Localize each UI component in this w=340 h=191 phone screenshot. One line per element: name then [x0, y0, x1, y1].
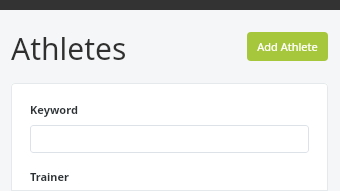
button[interactable]: Add Athlete [247, 32, 328, 61]
button[interactable] [30, 125, 309, 153]
staticText: Keyword [30, 102, 78, 117]
staticText: Add Athlete [257, 39, 318, 54]
staticText: Trainer [30, 169, 70, 184]
staticText: Athletes [11, 28, 127, 69]
